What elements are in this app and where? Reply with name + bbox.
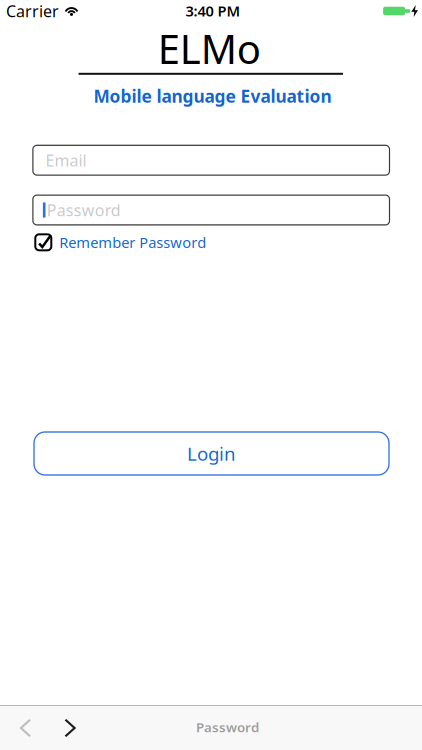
staticText: Mobile language Evaluation <box>93 84 331 107</box>
button[interactable]: Previous field <box>10 707 41 749</box>
staticText: Carrier <box>6 0 59 22</box>
staticText: Remember Password <box>59 233 206 252</box>
staticText: ELMo <box>158 22 261 75</box>
staticText: Password <box>47 199 121 221</box>
button[interactable]: Next field <box>54 707 86 749</box>
button[interactable]: Email <box>33 145 389 175</box>
staticText: 3:40 PM <box>185 1 240 20</box>
staticText: Password <box>196 718 259 736</box>
button[interactable]: Login <box>34 432 389 475</box>
staticText: Login <box>187 441 236 466</box>
staticText: Email <box>45 150 86 171</box>
button[interactable]: Password <box>33 195 389 225</box>
button[interactable]: Remember Password <box>34 233 206 252</box>
